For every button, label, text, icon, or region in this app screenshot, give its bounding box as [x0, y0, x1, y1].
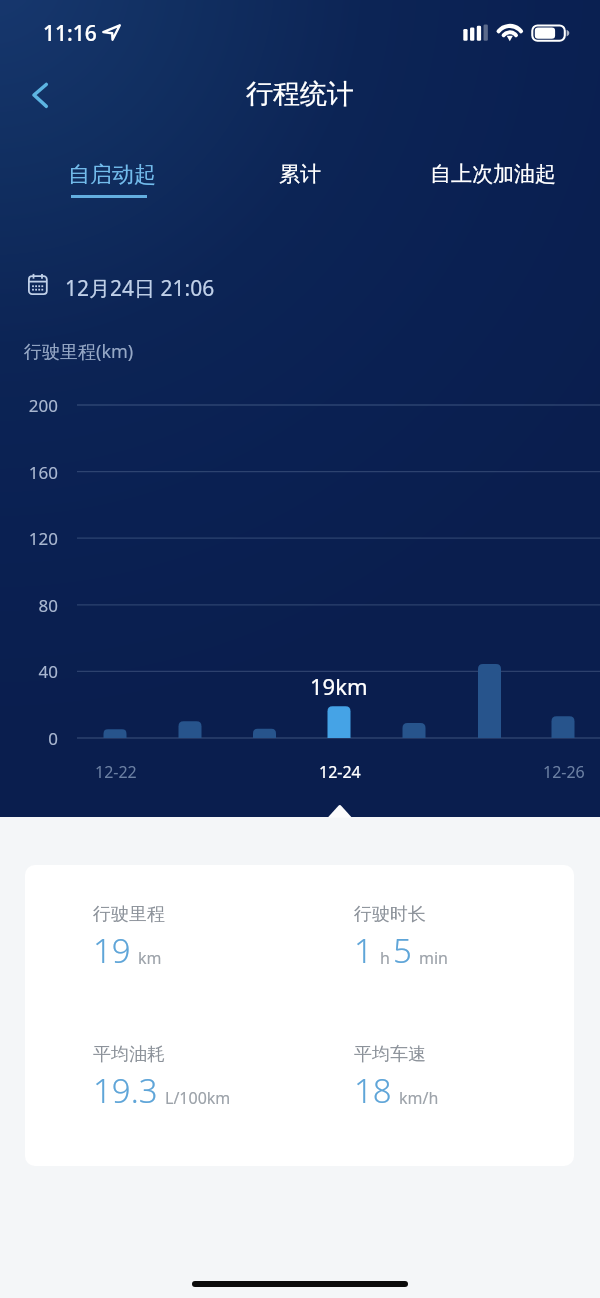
staticText: 行程统计: [246, 77, 354, 111]
staticText: L/100km: [165, 1087, 231, 1109]
staticText: 0: [48, 727, 58, 750]
button[interactable]: 累计: [220, 148, 380, 204]
staticText: 19.3: [93, 1068, 158, 1113]
button[interactable]: 自启动起: [32, 148, 192, 204]
staticText: 120: [28, 527, 58, 550]
staticText: 行驶里程: [93, 903, 165, 926]
staticText: 累计: [279, 161, 321, 187]
staticText: km: [138, 947, 162, 969]
staticText: min: [419, 947, 448, 969]
staticText: 160: [28, 461, 58, 484]
staticText: 12月24日 21:06: [65, 274, 215, 303]
staticText: 5: [393, 928, 412, 973]
staticText: 行驶时长: [354, 903, 426, 926]
staticText: 平均油耗: [93, 1043, 165, 1066]
staticText: 12-26: [543, 761, 585, 783]
staticText: 19: [93, 928, 131, 973]
staticText: 11:16: [43, 19, 97, 48]
staticText: 200: [28, 394, 58, 417]
staticText: 自上次加油起: [430, 161, 556, 187]
staticText: 18: [354, 1068, 392, 1113]
staticText: 行驶里程(km): [24, 339, 134, 364]
staticText: 40: [38, 660, 58, 683]
button[interactable]: 行驶里程: [25, 865, 574, 1166]
staticText: 12-22: [95, 761, 137, 783]
staticText: 平均车速: [354, 1043, 426, 1066]
button[interactable]: Back: [16, 73, 60, 117]
staticText: 1: [354, 928, 373, 973]
staticText: 19km: [310, 671, 368, 701]
button[interactable]: 自上次加油起: [413, 148, 573, 204]
staticText: km/h: [399, 1087, 439, 1109]
staticText: 80: [38, 594, 58, 617]
staticText: 自启动起: [68, 161, 156, 189]
staticText: h: [380, 947, 390, 969]
staticText: 12-24: [319, 761, 361, 783]
